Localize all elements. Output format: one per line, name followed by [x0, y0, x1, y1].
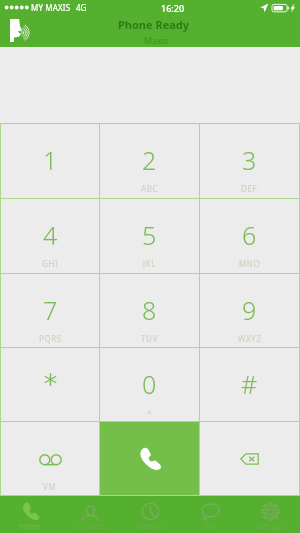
staticText: 16:20 [161, 2, 185, 14]
staticText: MY MAXIS [31, 2, 71, 13]
staticText: + [147, 407, 153, 418]
staticText: WXYZ [238, 333, 262, 344]
button[interactable]: 4 [1, 199, 99, 273]
button[interactable]: # [200, 348, 299, 421]
staticText: JKL [143, 258, 157, 269]
button[interactable]: 5 [100, 199, 199, 273]
staticText: 6 [242, 218, 257, 252]
button[interactable]: 1 [1, 124, 99, 198]
button[interactable]: Settings [240, 496, 300, 533]
staticText: 2 [142, 143, 157, 177]
staticText: History [138, 522, 162, 532]
staticText: Maxis [144, 34, 169, 46]
button[interactable]: 9 [200, 274, 299, 347]
button[interactable]: 3 [200, 124, 299, 198]
button[interactable]: 8 [100, 274, 199, 347]
button[interactable]: 0 [100, 348, 199, 421]
staticText: PQRS [39, 333, 62, 344]
staticText: 1 [43, 143, 58, 177]
button[interactable]: 7 [1, 274, 99, 347]
button[interactable]: IM [180, 496, 240, 533]
button[interactable]: 2 [100, 124, 199, 198]
staticText: 5 [142, 218, 157, 252]
staticText: MNO [239, 258, 261, 269]
staticText: VM [43, 481, 57, 492]
button[interactable]: Star [1, 348, 99, 421]
staticText: Settings [257, 522, 284, 532]
staticText: Phone [19, 522, 41, 532]
staticText: TUV [141, 333, 158, 344]
button[interactable]: Call [100, 422, 199, 495]
button[interactable]: Contacts [60, 496, 120, 533]
staticText: # [241, 367, 258, 401]
staticText: 8 [142, 293, 157, 327]
staticText: GHI [42, 258, 59, 269]
staticText: ABC [141, 183, 159, 194]
staticText: 9 [242, 293, 257, 327]
staticText: 7 [43, 293, 58, 327]
staticText: 4G [76, 2, 87, 13]
staticText: 3 [242, 143, 257, 177]
button[interactable]: History [120, 496, 180, 533]
staticText: Contacts [76, 522, 105, 532]
button[interactable]: Phone [0, 496, 60, 533]
button[interactable]: 6 [200, 199, 299, 273]
staticText: DEF [241, 183, 258, 194]
button[interactable]: Voicemail [1, 422, 99, 495]
staticText: 4 [43, 218, 58, 252]
staticText: IM [206, 522, 215, 532]
button[interactable]: Backspace [200, 422, 299, 495]
button[interactable]: Voice assistant [4, 14, 38, 47]
staticText: 0 [142, 367, 157, 401]
staticText: Phone Ready [118, 17, 190, 32]
